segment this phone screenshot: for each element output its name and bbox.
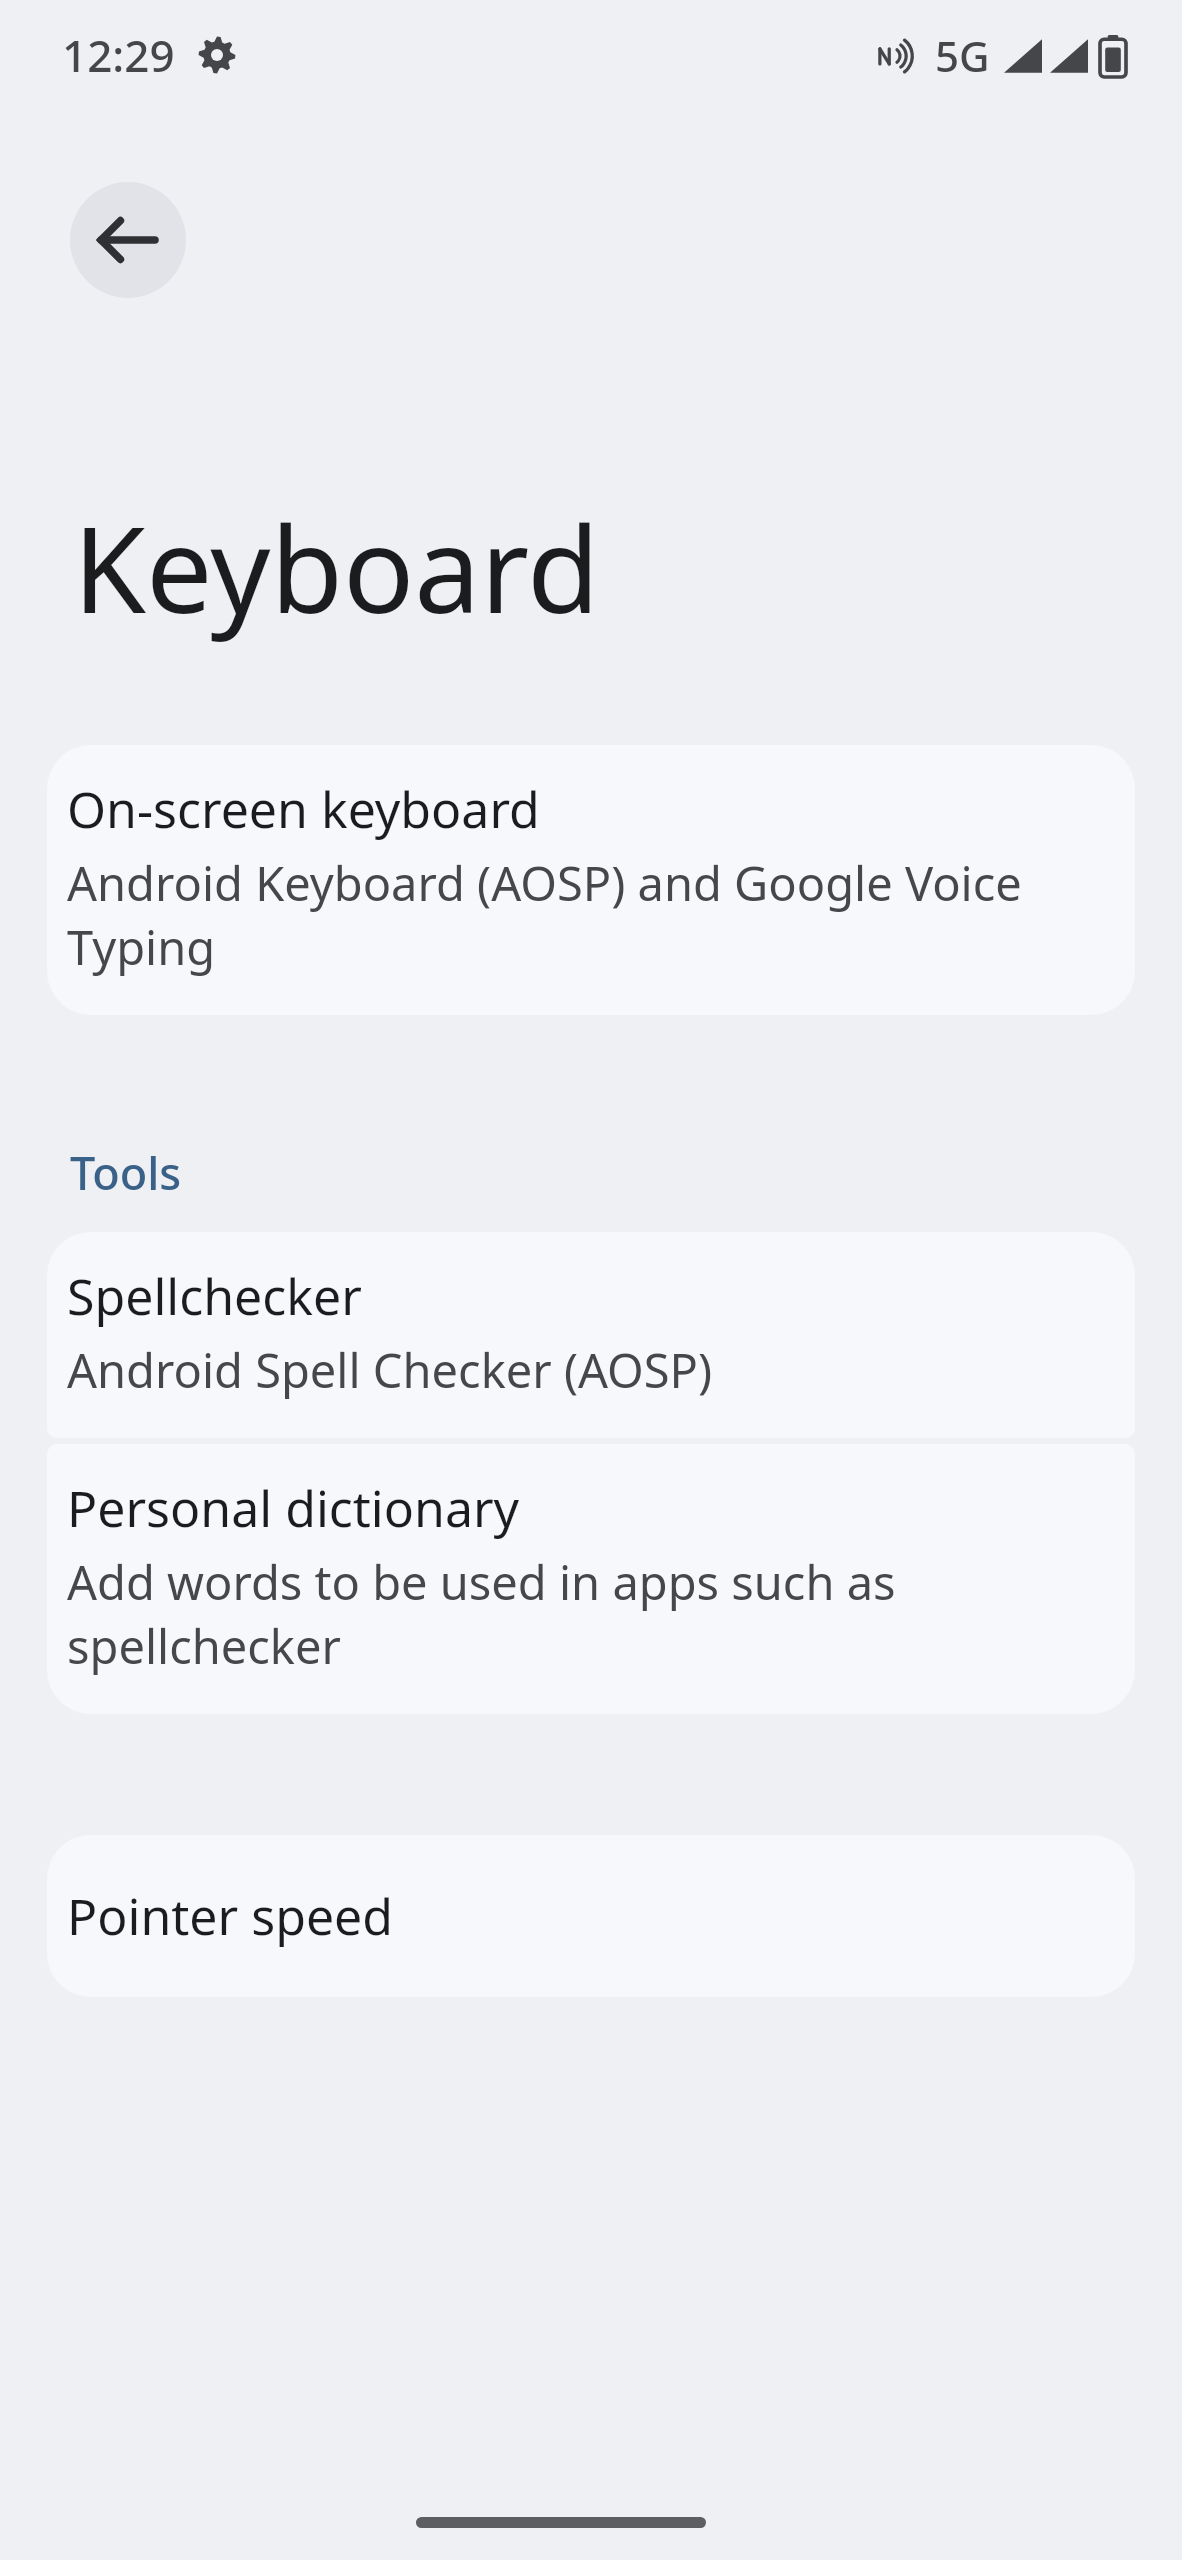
staticText: On-screen keyboard bbox=[67, 775, 540, 843]
button[interactable]: On-screen keyboard bbox=[47, 745, 1135, 1015]
staticText: Add words to be used in apps such as spe… bbox=[67, 1550, 896, 1678]
staticText: Android Spell Checker (AOSP) bbox=[67, 1338, 713, 1402]
staticText: 12:29 bbox=[62, 25, 175, 85]
staticText: Keyboard bbox=[73, 487, 600, 648]
button[interactable]: Back bbox=[70, 182, 186, 298]
staticText: Android Keyboard (AOSP) and Google Voice… bbox=[67, 851, 1022, 979]
button[interactable]: Spellchecker bbox=[47, 1232, 1135, 1438]
other: Settings bbox=[197, 35, 237, 75]
staticText: Personal dictionary bbox=[67, 1474, 520, 1542]
staticText: 5G bbox=[935, 27, 990, 84]
button[interactable]: Personal dictionary bbox=[47, 1444, 1135, 1714]
staticText: Pointer speed bbox=[67, 1882, 394, 1950]
staticText: Tools bbox=[70, 1142, 182, 1203]
button[interactable]: Pointer speed bbox=[47, 1835, 1135, 1997]
staticText: Spellchecker bbox=[67, 1262, 362, 1330]
